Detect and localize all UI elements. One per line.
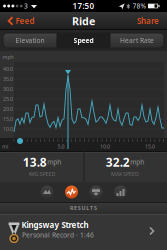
staticText: 15.0 bbox=[145, 143, 155, 150]
button[interactable]: Feed bbox=[4, 13, 38, 29]
staticText: 3 bbox=[24, 2, 28, 10]
staticText: mph bbox=[47, 158, 61, 166]
staticText: 40.0 bbox=[3, 65, 13, 73]
button[interactable]: Elevation graph bbox=[40, 185, 53, 198]
button[interactable]: Heart Rate bbox=[110, 33, 163, 48]
staticText: 78% bbox=[132, 2, 146, 10]
staticText: 17:50 bbox=[72, 1, 94, 11]
button[interactable]: Elevation bbox=[3, 33, 56, 48]
staticText: MAX SPEED bbox=[111, 170, 139, 178]
button[interactable]: Speed bbox=[57, 33, 110, 48]
staticText: 30.0 bbox=[3, 85, 13, 93]
staticText: Ride bbox=[72, 14, 95, 28]
staticText: Feed bbox=[15, 16, 34, 26]
staticText: RESULTS bbox=[70, 204, 97, 212]
staticText: Speed bbox=[73, 36, 93, 45]
staticText: 10.0 bbox=[3, 125, 13, 133]
button[interactable]: Grade graph bbox=[114, 185, 127, 198]
staticText: Personal Record · 1:46 bbox=[22, 231, 94, 239]
staticText: Heart Rate bbox=[120, 36, 154, 45]
staticText: mi bbox=[2, 143, 8, 150]
button[interactable]: Share bbox=[133, 13, 163, 29]
staticText: 13.8 bbox=[23, 154, 47, 170]
staticText: Share bbox=[137, 16, 159, 26]
staticText: 10.0 bbox=[100, 143, 110, 150]
staticText: 35.0 bbox=[3, 75, 13, 83]
button[interactable]: Speed graph bbox=[65, 185, 78, 198]
staticText: AVG SPEED bbox=[28, 170, 55, 178]
staticText: 15.0 bbox=[3, 115, 13, 123]
staticText: mph bbox=[2, 53, 13, 61]
staticText: 25.0 bbox=[3, 95, 13, 103]
staticText: Kingsway Stretch bbox=[21, 220, 88, 230]
staticText: 20.0 bbox=[3, 105, 13, 113]
staticText: 32.2 bbox=[106, 154, 130, 170]
staticText: 5.0 bbox=[57, 143, 64, 150]
staticText: mph bbox=[130, 158, 144, 166]
button[interactable]: Kingsway Stretch bbox=[0, 214, 167, 250]
staticText: Elevation bbox=[15, 36, 44, 45]
button[interactable]: Heart rate graph bbox=[89, 185, 102, 198]
